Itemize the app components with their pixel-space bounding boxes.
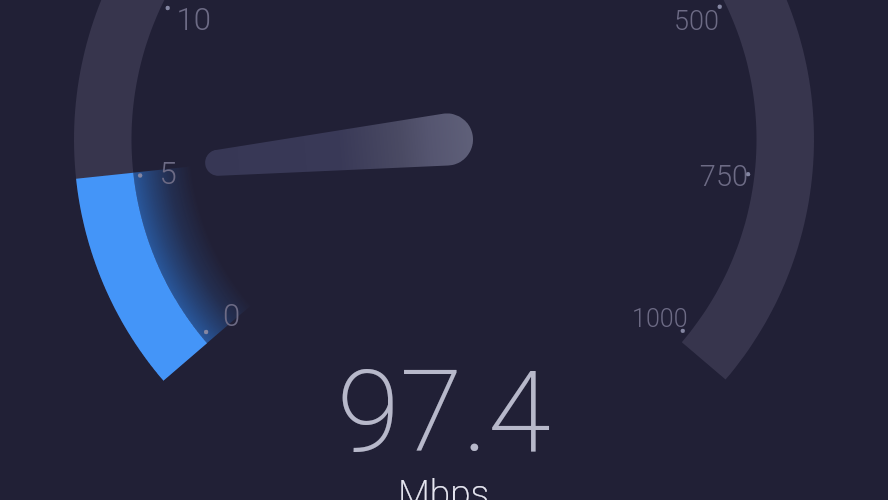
button[interactable]: Speed test result, 97.4 Mbps (0, 0, 888, 500)
